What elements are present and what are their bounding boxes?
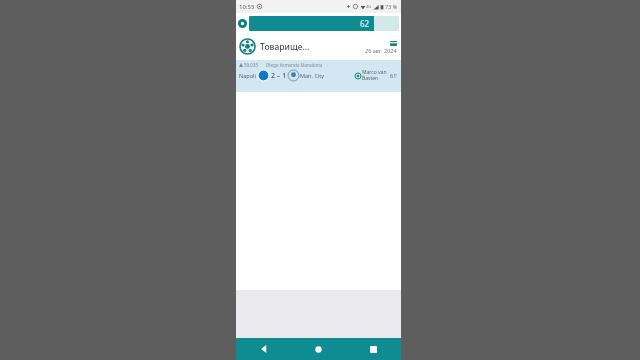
staticText: 62	[360, 18, 370, 29]
staticText: 4G	[366, 4, 372, 9]
button[interactable]: Football	[236, 33, 401, 60]
other: Napoli crest	[258, 70, 269, 81]
button[interactable]: 59,035	[236, 60, 401, 92]
other: Manchester City crest	[288, 70, 299, 81]
staticText: 61'	[390, 72, 398, 79]
other: Calendar	[390, 40, 397, 46]
staticText: 73 %	[385, 3, 398, 10]
other: Football	[240, 39, 255, 54]
staticText: 26 авг. 2024	[365, 47, 397, 54]
staticText: Товарищеский матч	[260, 41, 312, 53]
staticText: Diego Armando Maradona	[266, 62, 323, 68]
button[interactable]: Back	[236, 338, 291, 360]
staticText: Napoli	[239, 72, 256, 79]
staticText: Man. City	[300, 72, 325, 79]
staticText: Marco van Basten	[362, 69, 387, 82]
staticText: 10:55	[239, 3, 255, 11]
button[interactable]: Recent apps	[346, 338, 401, 360]
button[interactable]: Home	[291, 338, 346, 360]
other: Timer	[238, 19, 247, 28]
staticText: 2 – 1	[271, 71, 287, 81]
button[interactable]: 62	[249, 16, 399, 31]
staticText: 59,035	[244, 62, 259, 68]
